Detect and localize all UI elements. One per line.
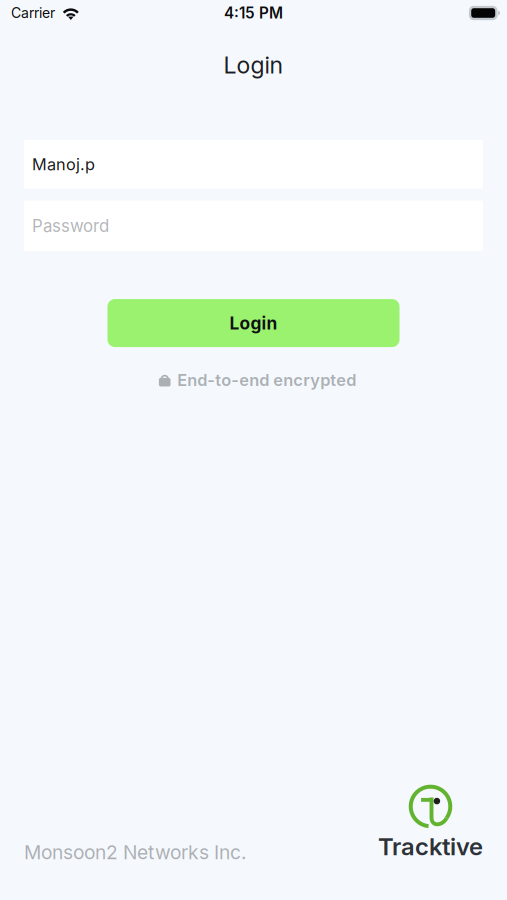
button[interactable]: Password	[24, 201, 483, 251]
button[interactable]: Login	[107, 299, 399, 347]
staticText: End-to-end encrypted	[177, 370, 356, 390]
staticText: Carrier	[11, 4, 55, 21]
staticText: Monsoon2 Networks Inc.	[24, 841, 247, 864]
staticText: Tracktive	[378, 832, 483, 861]
staticText: Password	[32, 216, 109, 236]
staticText: Login	[223, 51, 283, 79]
staticText: 4:15 PM	[224, 4, 283, 22]
button[interactable]: Manoj.p	[24, 140, 483, 189]
staticText: Manoj.p	[32, 154, 95, 174]
staticText: Login	[229, 313, 277, 334]
